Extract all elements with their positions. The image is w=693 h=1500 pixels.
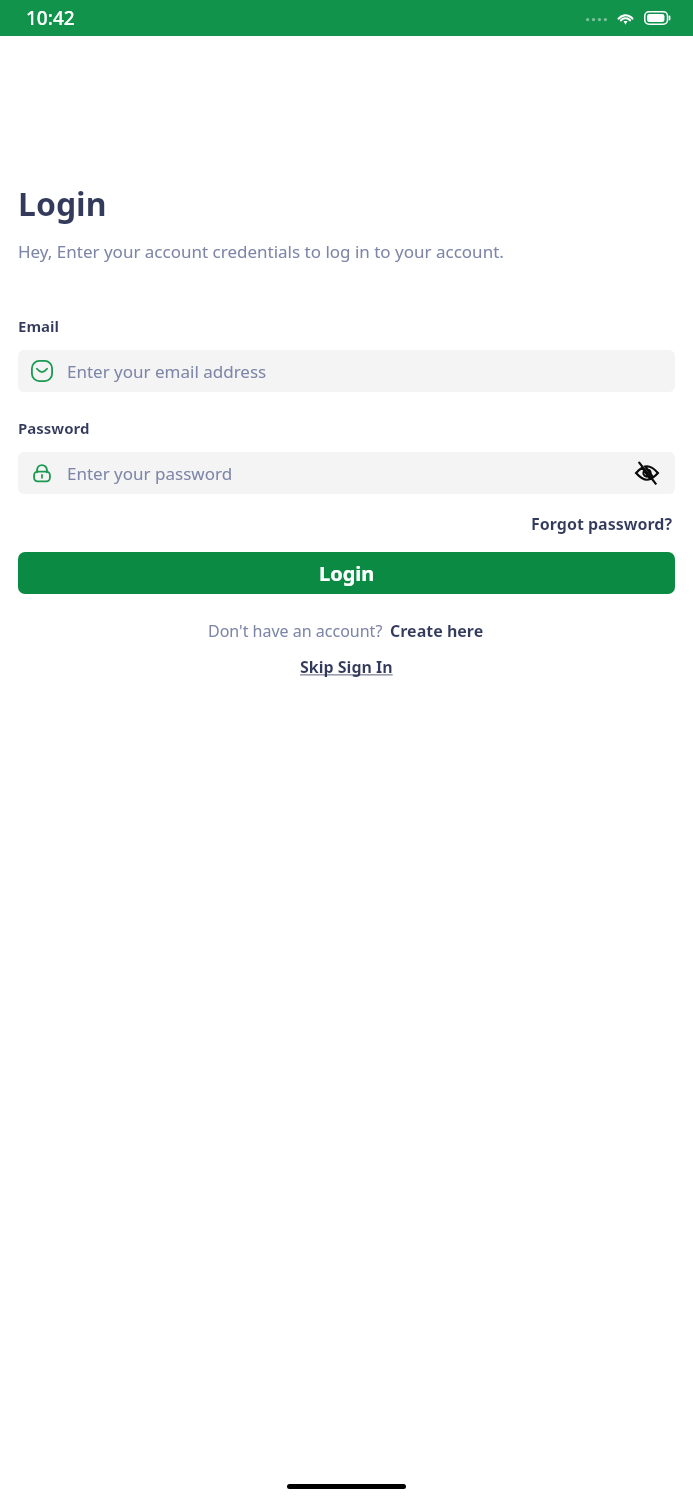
staticText: Enter your password [67,462,632,485]
staticText: Don't have an account? [208,620,383,642]
button[interactable]: Create here [389,618,485,644]
staticText: Enter your email address [67,360,662,383]
button[interactable]: Enter your email address [18,350,675,392]
staticText: Password [18,418,90,438]
button[interactable]: Show password [632,458,662,488]
staticText: Login [18,182,107,226]
button[interactable]: Forgot password? [529,510,675,538]
staticText: Email [18,316,59,336]
button[interactable]: Login [18,552,675,594]
staticText: Login [319,560,375,587]
staticText: Hey, Enter your account credentials to l… [18,240,504,263]
staticText: Forgot password? [531,513,673,535]
staticText: 10:42 [26,5,75,31]
staticText: Skip Sign In [300,656,393,678]
button[interactable]: Skip Sign In [298,654,395,680]
staticText: Create here [390,620,484,642]
button[interactable]: Enter your password [18,452,675,494]
